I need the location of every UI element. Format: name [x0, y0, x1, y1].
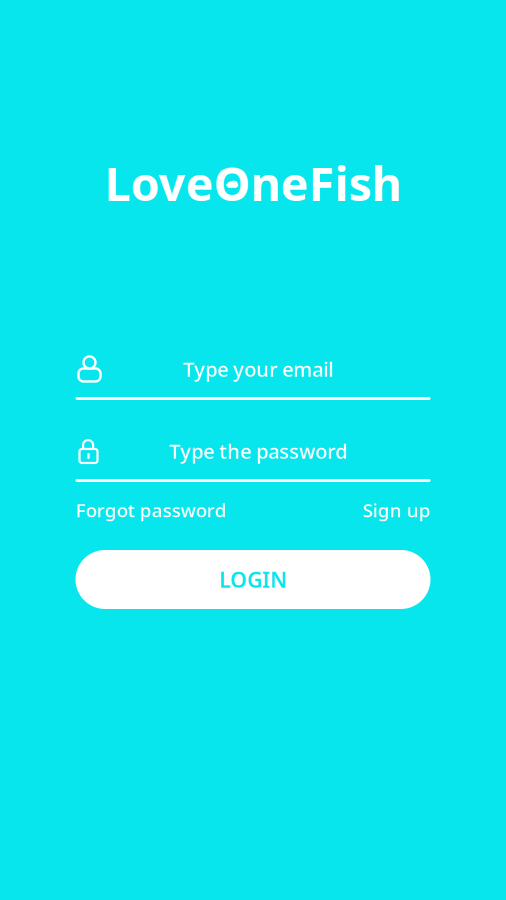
button[interactable]: LOGIN [75, 550, 430, 609]
staticText: Sign up [362, 498, 430, 522]
staticText: Type your email [183, 356, 333, 382]
button[interactable]: Sign up [362, 498, 430, 522]
button[interactable]: Forgot password [75, 498, 226, 522]
staticText: Forgot password [75, 498, 226, 522]
button[interactable]: Type your email [75, 356, 430, 400]
button[interactable]: Type the password [75, 438, 430, 482]
staticText: Type the password [169, 438, 347, 464]
staticText: LOGIN [219, 565, 287, 594]
staticText: LoveOneFish [104, 152, 401, 214]
